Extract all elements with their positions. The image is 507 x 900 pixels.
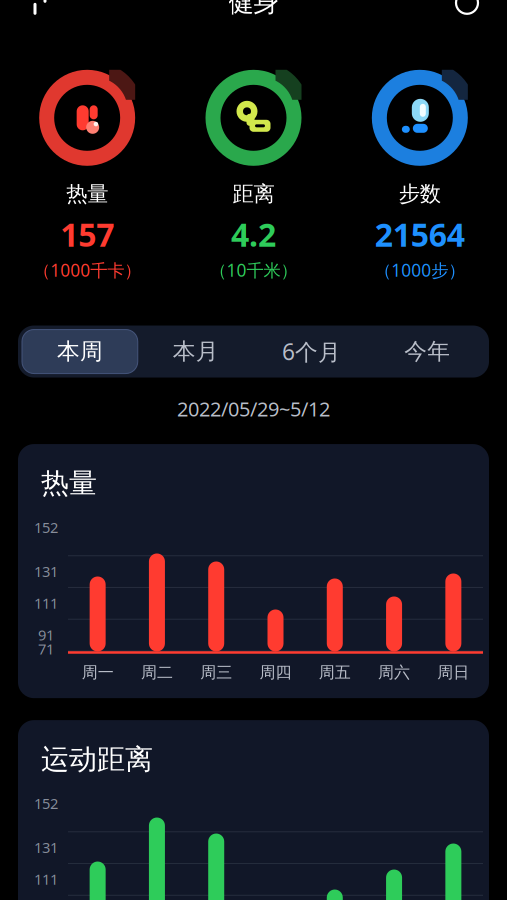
staticText: 131: [34, 838, 58, 857]
staticText: （10千米）: [209, 258, 297, 281]
staticText: 健身: [228, 0, 278, 18]
staticText: 热量: [66, 181, 108, 207]
staticText: 距离: [232, 181, 274, 207]
staticText: 周四: [259, 662, 291, 682]
staticText: 2022/05/29~5/12: [177, 395, 330, 422]
staticText: 157: [60, 213, 114, 255]
staticText: 运动距离: [41, 742, 153, 776]
staticText: 周二: [141, 662, 173, 682]
staticText: 热量: [41, 466, 97, 500]
staticText: 111: [34, 593, 58, 613]
staticText: 131: [34, 561, 58, 581]
staticText: 152: [34, 517, 58, 537]
button[interactable]: 6个月: [253, 329, 369, 373]
staticText: 21564: [375, 213, 465, 255]
staticText: 91: [38, 625, 54, 644]
button[interactable]: 步数: [337, 70, 503, 281]
staticText: 4.2: [231, 213, 276, 255]
button[interactable]: 热量: [4, 70, 170, 281]
staticText: 本周: [57, 338, 103, 365]
staticText: （1000千卡）: [33, 258, 141, 281]
staticText: 周六: [378, 662, 410, 682]
staticText: 71: [38, 639, 54, 658]
staticText: 周日: [437, 662, 469, 682]
button[interactable]: 返回: [18, 0, 62, 25]
staticText: 周五: [319, 662, 351, 682]
button[interactable]: 今年: [369, 329, 485, 373]
button[interactable]: 本月: [138, 329, 254, 373]
staticText: 152: [34, 793, 58, 813]
staticText: 本月: [173, 338, 219, 365]
staticText: （1000步）: [374, 258, 465, 281]
staticText: 111: [34, 869, 58, 889]
staticText: 6个月: [282, 336, 341, 367]
staticText: 今年: [404, 338, 450, 365]
staticText: 周三: [200, 662, 232, 682]
button[interactable]: 距离: [170, 70, 337, 281]
staticText: 步数: [399, 181, 441, 207]
button[interactable]: 刷新: [445, 0, 489, 25]
button[interactable]: 本周: [22, 329, 138, 373]
staticText: 周一: [82, 662, 114, 682]
